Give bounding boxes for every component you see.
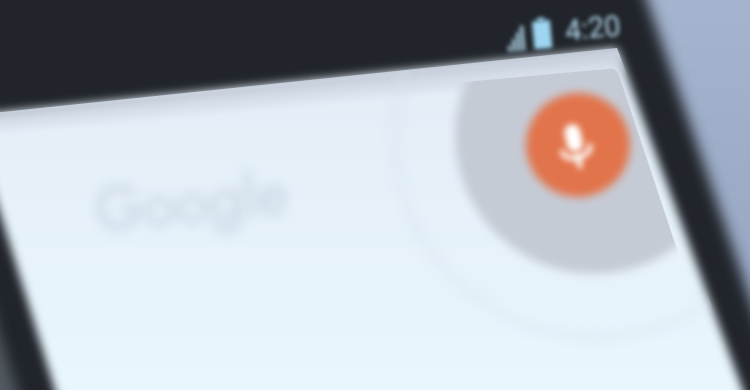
- button[interactable]: Search Google: [60, 118, 450, 236]
- button[interactable]: Voice search: [526, 93, 630, 197]
